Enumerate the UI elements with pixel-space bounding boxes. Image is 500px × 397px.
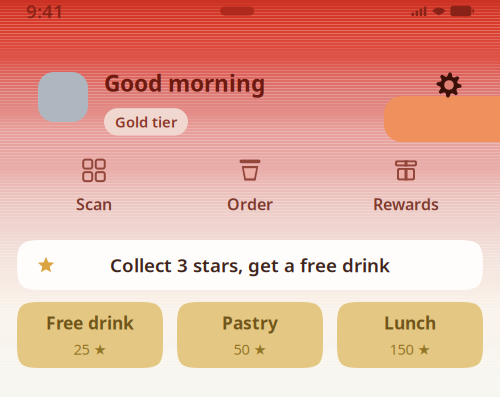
- staticText: 50 ★: [233, 339, 266, 359]
- staticText: Scan: [76, 193, 112, 215]
- button[interactable]: Collect 3 stars, get a free drink: [17, 240, 483, 290]
- staticText: Gold tier: [115, 112, 177, 132]
- button[interactable]: Free drink: [17, 302, 163, 368]
- staticText: 9:41: [26, 0, 64, 23]
- staticText: Good morning: [104, 68, 265, 98]
- staticText: Pastry: [222, 311, 278, 334]
- button[interactable]: Rewards: [328, 154, 484, 216]
- staticText: Order: [227, 193, 273, 215]
- staticText: Free drink: [46, 311, 134, 334]
- staticText: 25 ★: [73, 339, 106, 359]
- button[interactable]: Scan: [16, 154, 172, 216]
- staticText: Collect 3 stars, get a free drink: [110, 253, 390, 277]
- button[interactable]: Settings: [436, 68, 462, 98]
- staticText: 150 ★: [389, 339, 430, 359]
- staticText: Lunch: [384, 311, 436, 334]
- button[interactable]: Order: [172, 154, 328, 216]
- button[interactable]: Lunch: [337, 302, 483, 368]
- staticText: Rewards: [373, 193, 439, 215]
- button[interactable]: Pastry: [177, 302, 323, 368]
